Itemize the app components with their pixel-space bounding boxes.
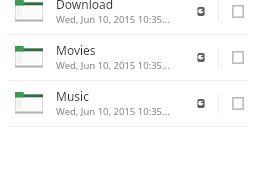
button[interactable]: Select Music [219,81,257,126]
button[interactable]: Select Download [219,0,257,34]
staticText: Download [56,0,114,12]
staticText: Wed, Jun 10, 2015 10:35... [56,59,170,72]
staticText: Music [56,88,89,104]
staticText: Wed, Jun 10, 2015 10:35... [56,13,170,26]
button[interactable]: Movies [0,35,257,80]
button[interactable]: Music [0,81,257,126]
button[interactable]: Download [0,0,257,34]
staticText: Movies [56,42,96,58]
staticText: Wed, Jun 10, 2015 10:35... [56,105,170,118]
button[interactable]: Select Movies [219,35,257,80]
